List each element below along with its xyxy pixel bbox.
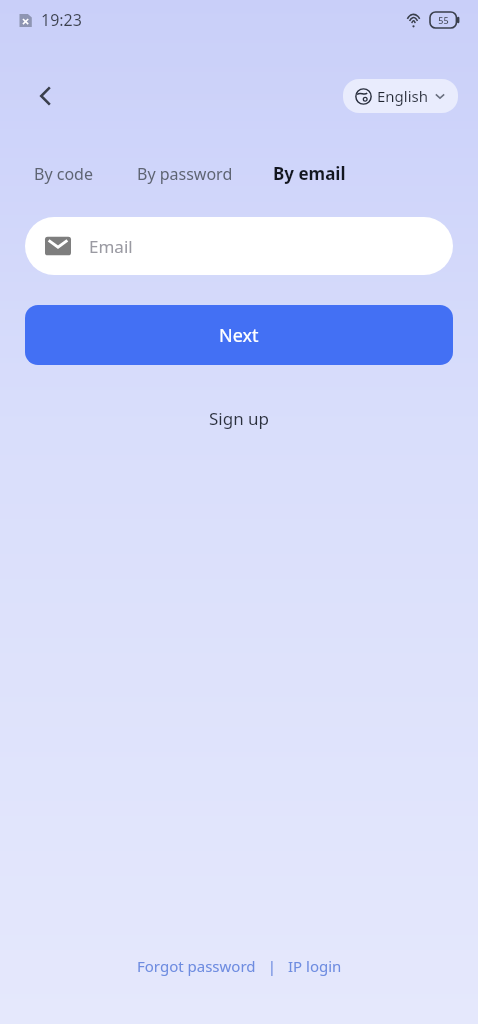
button[interactable]: By code bbox=[30, 157, 97, 191]
button[interactable]: Sign up bbox=[195, 401, 284, 436]
button[interactable]: Email bbox=[25, 217, 453, 275]
staticText: Next bbox=[219, 323, 259, 348]
button[interactable]: By email bbox=[269, 156, 350, 191]
staticText: 19:23 bbox=[41, 9, 82, 31]
button[interactable]: English bbox=[343, 79, 458, 113]
staticText: By code bbox=[34, 163, 93, 185]
staticText: Forgot password bbox=[137, 956, 256, 976]
button[interactable]: Next bbox=[25, 305, 453, 365]
staticText: 55 bbox=[438, 14, 449, 26]
button[interactable]: By password bbox=[133, 157, 237, 191]
button[interactable]: Forgot password bbox=[133, 952, 260, 980]
staticText: Email bbox=[89, 235, 133, 258]
staticText: | bbox=[260, 956, 284, 976]
staticText: English bbox=[377, 86, 429, 106]
button[interactable]: Back bbox=[26, 76, 66, 116]
staticText: IP login bbox=[288, 956, 342, 976]
staticText: By password bbox=[137, 163, 233, 185]
button[interactable]: IP login bbox=[284, 952, 346, 980]
staticText: Sign up bbox=[209, 407, 270, 430]
staticText: By email bbox=[273, 162, 346, 185]
